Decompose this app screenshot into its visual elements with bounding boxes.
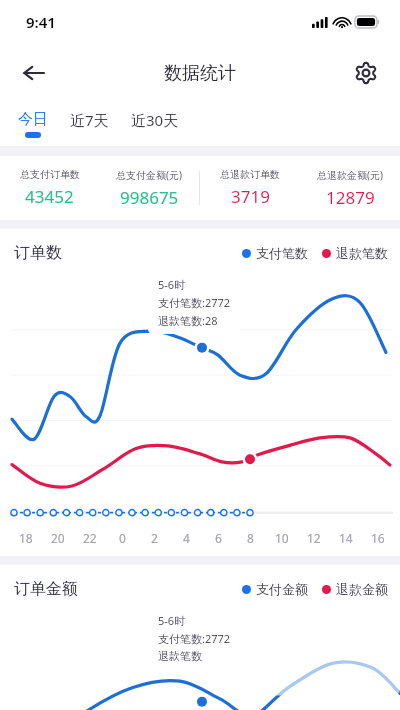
staticText: 2: [151, 530, 158, 546]
staticText: 20: [51, 530, 65, 546]
button[interactable]: 近30天: [131, 102, 179, 146]
staticText: 12879: [326, 186, 375, 209]
staticText: 退款笔数:28: [158, 313, 218, 328]
staticText: 4: [183, 530, 190, 546]
staticText: 10: [275, 530, 289, 546]
staticText: 总退款订单数: [220, 168, 280, 181]
staticText: 总支付订单数: [20, 168, 80, 181]
staticText: 998675: [120, 186, 179, 209]
staticText: 9:41: [26, 12, 56, 32]
staticText: 3719: [231, 185, 270, 208]
staticText: 总支付金额(元): [116, 168, 182, 182]
staticText: 支付笔数: [256, 245, 308, 261]
button[interactable]: Back: [12, 51, 56, 95]
staticText: 5-6时: [158, 613, 186, 628]
staticText: 今日: [18, 110, 48, 129]
staticText: 数据统计: [164, 62, 236, 85]
staticText: 退款笔数: [158, 649, 202, 663]
button[interactable]: Settings: [344, 51, 388, 95]
staticText: 订单金额: [14, 579, 78, 599]
staticText: 支付金额: [256, 581, 308, 597]
staticText: 43452: [25, 185, 74, 208]
staticText: 0: [119, 530, 126, 546]
staticText: 总退款金额(元): [317, 168, 383, 182]
staticText: 退款笔数: [336, 245, 388, 261]
button[interactable]: 今日: [18, 102, 48, 146]
staticText: 16: [371, 530, 385, 546]
staticText: 6: [215, 530, 222, 546]
button[interactable]: 近7天: [70, 102, 109, 146]
staticText: 订单数: [14, 243, 62, 263]
staticText: 近7天: [70, 110, 109, 130]
staticText: 18: [19, 530, 33, 546]
staticText: 22: [83, 530, 97, 546]
staticText: 5-6时: [158, 277, 186, 292]
staticText: 近30天: [131, 110, 179, 130]
staticText: 8: [247, 530, 254, 546]
staticText: 支付笔数:2772: [158, 631, 231, 646]
staticText: 支付笔数:2772: [158, 295, 231, 310]
staticText: 14: [339, 530, 353, 546]
staticText: 退款金额: [336, 581, 388, 597]
staticText: 12: [307, 530, 321, 546]
